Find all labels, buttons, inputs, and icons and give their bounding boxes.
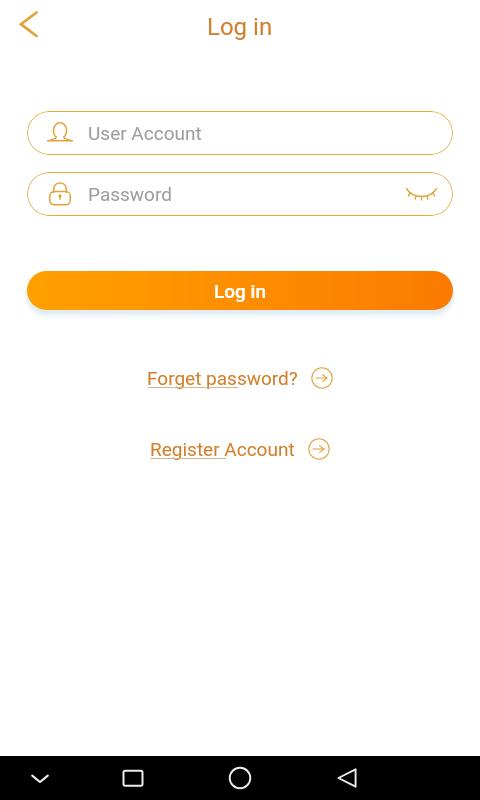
staticText: Forget password? [147, 367, 298, 389]
button[interactable]: Show password [400, 173, 442, 215]
staticText: Log in [214, 280, 267, 302]
button[interactable]: Back [325, 756, 369, 800]
staticText: User Account [88, 122, 202, 144]
staticText: Log in [207, 13, 273, 41]
button[interactable]: Back [6, 4, 48, 46]
button[interactable]: Register Account [150, 438, 330, 460]
button[interactable]: Home [218, 756, 262, 800]
staticText: Register Account [150, 438, 295, 460]
button[interactable]: User Account [27, 111, 453, 155]
button[interactable]: Log in [27, 271, 453, 310]
staticText: Password [88, 183, 172, 205]
button[interactable]: Forget password? [147, 367, 333, 389]
button[interactable]: Hide keyboard [18, 756, 62, 800]
button[interactable]: Recent apps [111, 756, 155, 800]
button[interactable]: Password [27, 172, 453, 216]
